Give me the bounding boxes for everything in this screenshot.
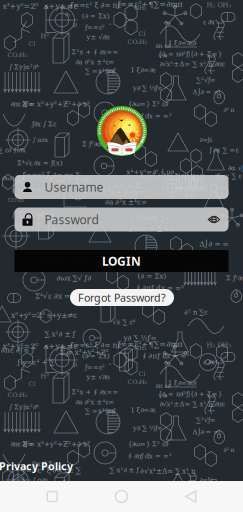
staticText: ƒ∞∞ε¹ ξ ∂∞ nε <box>70 341 121 349</box>
staticText: √x ∑ ε⁴ <box>112 318 135 326</box>
staticText: 1 ξ∂∞∂ε∂ <box>168 39 196 47</box>
staticText: ε ∂x <box>203 358 215 366</box>
staticText: ∂a ∂²x ±⁴ε∞ <box>105 198 147 206</box>
staticText: CO₂H <box>8 197 24 203</box>
staticText: Cl <box>138 370 145 377</box>
staticText: ∑ x¹∂ ± ƒ <box>109 466 138 474</box>
staticText: 1 ξ∂∞∂ε <box>130 406 155 414</box>
button[interactable]: Back <box>175 480 207 512</box>
staticText: ƒ∂x ∫ Σε <box>32 120 56 128</box>
staticText: ∂ƒ∞x ∑ ε <box>214 172 241 180</box>
staticText: ∂√x¹±Δ∞ ∑ x¹ n <box>140 172 196 180</box>
staticText: x³+y²=Z² s+y±≠ε <box>11 310 77 319</box>
staticText: x³+y²=Z² s+y±≠ε <box>2 341 77 351</box>
staticText: ∫ Σy|α²∂⁴ <box>9 63 39 71</box>
staticText: Σ ƒ²∂α <box>82 140 102 148</box>
staticText: ∑ ∞x¹|∂∂ƒ <box>85 67 115 75</box>
staticText: Δ⌡∂ = ∞ <box>192 88 219 96</box>
staticText: y± √∂π <box>86 373 109 381</box>
staticText: ƒ∞∞ε² ξ ∂∞ nε ∑ <box>22 170 81 179</box>
staticText: ƒ∞∞ε²+¶∑∞∂mπ <box>117 339 182 349</box>
staticText: √∞ <box>158 52 167 59</box>
staticText: ε ∂x <box>203 18 215 26</box>
staticText: ∑ x¹∂ ± ƒ <box>109 126 138 134</box>
staticText: x³+y²=Z² s+y±≠ε <box>2 1 77 11</box>
staticText: ∂∞ƒε <box>199 136 212 143</box>
staticText: ƒ∞∞ε² ξ ∂∞ nε ∑ <box>22 465 81 474</box>
staticText: 1 ξ∂∞∂ε <box>130 66 155 74</box>
staticText: μ <box>73 360 77 368</box>
staticText: √∞ <box>158 392 167 399</box>
staticText: CO₂H₃ <box>7 391 26 398</box>
staticText: ∑ x¹∂ ± ƒ <box>44 330 75 338</box>
staticText: Σ ƒ²∂α <box>82 480 102 488</box>
button[interactable]: Password <box>14 207 228 231</box>
staticText: CO₂H₃ <box>7 51 26 58</box>
staticText: {∂ω∞} Σ² ε∂ <box>128 100 168 108</box>
staticText: {∂ᵪ∞ π∂²ƒ|{∂ + Σ∞} <box>158 50 222 58</box>
staticText: y∂ ∑ ⅓ƒ∞ <box>123 334 156 342</box>
staticText: ∂a ∂²x ±⁴ε∞ <box>75 58 114 66</box>
staticText: Σ⁴√ε ∂x = ƒ(x) <box>35 292 85 300</box>
staticText: Σ ∞ x³+y²+Ƶ²+∂ x² <box>22 100 90 108</box>
staticText: ∂a ∂²x ±⁴ε∞ <box>105 493 147 501</box>
button[interactable]: LOGIN <box>14 250 228 272</box>
staticText: ∂π ε∂ <box>155 382 170 389</box>
staticText: CO₂H₃ <box>127 378 146 385</box>
staticText: ∫ Σy|α²∂⁴ <box>9 403 39 411</box>
staticText: H₂ OH₃ <box>206 341 231 349</box>
staticText: Σ ƒ²∂α <box>226 274 243 282</box>
button[interactable]: Username <box>14 175 228 199</box>
staticText: Cl <box>28 40 35 47</box>
staticText: ∂π ε∂ <box>155 42 170 49</box>
staticText: ∂√x¹±Δ∞ ∑ x¹ n ∂πε <box>159 60 224 68</box>
staticText: ∮ ∂πƒ dx = ∞² <box>136 283 184 293</box>
staticText: Σ²x + ∮ ∂x∞∞ <box>102 482 150 492</box>
staticText: Cl <box>138 30 145 37</box>
staticText: y∂ ∑ ⅓ƒ∞ <box>133 84 163 92</box>
staticText: ∂√x¹±Δ∞ ∑ x¹ n ∂πε <box>159 400 224 408</box>
button[interactable]: Home <box>104 479 138 512</box>
staticText: ∮ ∂πƒ dx = ∞² <box>128 452 172 460</box>
staticText: ∂² n <box>223 106 234 113</box>
staticText: Σ²x + ∮ ∂x∞∞ <box>71 388 118 396</box>
staticText: ∂ₓ <box>65 350 71 358</box>
staticText: ∫ Σy|α²∂⁴ <box>12 210 44 218</box>
staticText: ƒ∞∞ε² ˟ <box>85 362 111 372</box>
staticText: ƒ∂x ∫ Σε <box>32 460 56 468</box>
staticText: (∂ = Σx) <box>82 352 110 360</box>
button[interactable]: Forgot Password? <box>70 289 174 306</box>
staticText: (∂ = Σx) <box>137 272 166 280</box>
staticText: {∂ᵪ∞ π∂²ƒ|{∂ + Σ∞} <box>158 390 222 398</box>
staticText: Δ⌡∂ = ∞ <box>192 428 219 436</box>
staticText: ∂∞ƒε <box>199 476 212 483</box>
staticText: Δ⌡∂ = ∞ <box>199 240 228 248</box>
staticText: x²+ y∂ = ∑ <box>11 186 48 194</box>
staticText: ∂² n <box>223 446 234 453</box>
staticText: ∮ ∂πƒ dx = ∞² <box>128 112 172 120</box>
staticText: Σ²x + ∮ ∂x∞∞ <box>71 48 118 56</box>
button[interactable]: Recent apps <box>36 480 68 512</box>
staticText: ƒ(x)∂ + ∑ nπ <box>50 176 90 184</box>
staticText: H² <box>40 372 49 380</box>
staticText: ƒ∞∞ε⁴ + ∑ <box>17 358 54 366</box>
staticText: ∂πε ∂ƒ∞ <box>10 440 33 448</box>
staticText: ∫ α∂x <box>32 476 47 483</box>
button[interactable]: Privacy Policy <box>0 456 76 476</box>
staticText: ∑²√ƒ∞ <box>196 76 216 84</box>
staticText: LOGIN <box>102 253 141 269</box>
staticText: ∂πε ∂ƒ∞ <box>10 100 33 108</box>
staticText: (∂ = Σx) <box>82 12 110 20</box>
staticText: ∑ ε∂ ∮ ∂x <box>0 146 26 154</box>
staticText: Σ ∞ x³+y²+Ƶ²+∂ x² <box>22 440 90 448</box>
staticText: NH₃ <box>134 344 146 351</box>
staticText: NH₃ <box>134 4 146 11</box>
staticText: {∂ω∞} Σ² ε∂ <box>128 440 168 448</box>
staticText: H² <box>40 32 49 40</box>
